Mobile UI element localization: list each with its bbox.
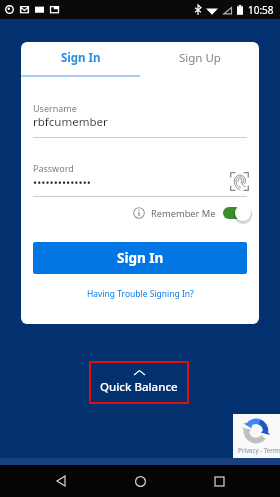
- other: Fingerprint login: [230, 172, 249, 191]
- staticText: Sign In: [117, 249, 164, 267]
- staticText: Remember Me: [151, 207, 216, 220]
- button[interactable]: Having Trouble Signing In?: [87, 288, 194, 300]
- staticText: 10:58: [248, 3, 274, 17]
- button[interactable]: Home: [122, 465, 158, 497]
- staticText: Username: [33, 102, 77, 114]
- button[interactable]: Quick Balance: [89, 361, 189, 404]
- staticText: ••••••••••••••: [33, 175, 91, 190]
- staticText: Sign In: [61, 50, 101, 66]
- button[interactable]: Back: [43, 465, 79, 497]
- staticText: rbfcumember: [33, 114, 108, 130]
- button[interactable]: Sign In: [33, 242, 247, 274]
- staticText: Password: [33, 162, 74, 174]
- button[interactable]: Sign Up: [140, 42, 259, 73]
- button[interactable]: Remember Me toggle: [223, 204, 252, 222]
- staticText: Privacy - Terms: [238, 446, 280, 454]
- staticText: Sign Up: [179, 50, 221, 66]
- staticText: Quick Balance: [100, 379, 178, 395]
- button[interactable]: Recent apps: [201, 465, 237, 497]
- button[interactable]: reCAPTCHA privacy and terms: [233, 414, 280, 458]
- button[interactable]: Sign In: [21, 42, 140, 73]
- other: Remember Me info: [133, 207, 145, 219]
